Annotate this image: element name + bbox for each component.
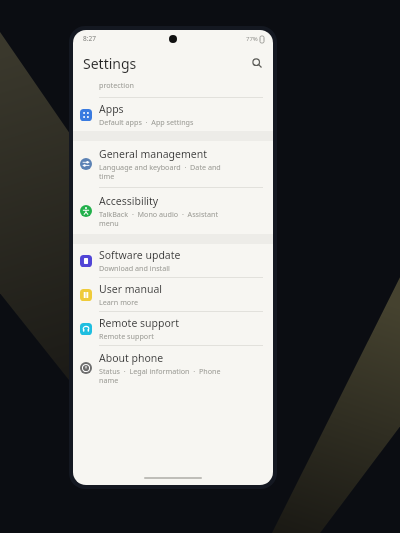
staticText: Accessibility: [99, 194, 159, 208]
button[interactable]: protection: [73, 79, 273, 97]
staticText: Download and install: [99, 263, 170, 273]
button[interactable]: General management: [73, 141, 273, 187]
staticText: Default apps · App settings: [99, 117, 194, 127]
staticText: protection: [99, 80, 134, 90]
staticText: General management: [99, 147, 207, 161]
button[interactable]: Apps: [73, 98, 273, 131]
staticText: Software update: [99, 248, 181, 262]
button[interactable]: Search: [249, 55, 265, 71]
staticText: Remote support: [99, 331, 154, 341]
button[interactable]: About phone: [73, 346, 273, 390]
staticText: User manual: [99, 282, 162, 296]
button[interactable]: Accessibility: [73, 188, 273, 234]
button[interactable]: Software update: [73, 244, 273, 277]
button[interactable]: User manual: [73, 278, 273, 311]
staticText: Status · Legal information · Phone name: [99, 366, 221, 386]
staticText: Apps: [99, 102, 124, 116]
staticText: 77%: [246, 35, 258, 43]
staticText: Remote support: [99, 316, 179, 330]
button[interactable]: Remote support: [73, 312, 273, 345]
staticText: About phone: [99, 351, 164, 365]
staticText: Language and keyboard · Date and time: [99, 162, 221, 182]
staticText: Settings: [83, 54, 137, 73]
staticText: 8:27: [83, 34, 96, 43]
staticText: TalkBack · Mono audio · Assistant menu: [99, 209, 219, 229]
staticText: Learn more: [99, 297, 139, 307]
